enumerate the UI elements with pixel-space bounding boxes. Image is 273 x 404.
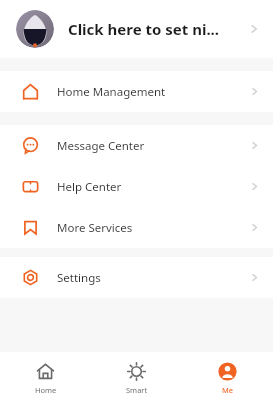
other: Me bbox=[218, 362, 237, 381]
other: Home bbox=[36, 362, 55, 381]
staticText: Smart bbox=[126, 385, 148, 395]
staticText: Click here to set ni... bbox=[68, 19, 243, 39]
other: Smart bbox=[127, 362, 146, 381]
staticText: Me bbox=[222, 385, 234, 395]
button[interactable]: Help Center bbox=[0, 166, 273, 207]
staticText: Message Center bbox=[57, 138, 250, 154]
button[interactable]: Me bbox=[182, 352, 273, 404]
button[interactable]: Message Center bbox=[0, 125, 273, 166]
staticText: Settings bbox=[57, 270, 250, 286]
button[interactable]: Settings bbox=[0, 257, 273, 298]
staticText: Help Center bbox=[57, 179, 250, 195]
button[interactable]: More Services bbox=[0, 207, 273, 248]
button[interactable]: Home bbox=[0, 352, 91, 404]
staticText: Home Management bbox=[57, 84, 250, 100]
staticText: Home bbox=[35, 385, 57, 395]
staticText: More Services bbox=[57, 220, 250, 236]
button[interactable]: Smart bbox=[91, 352, 182, 404]
button[interactable]: Click here to set ni... bbox=[0, 0, 273, 58]
button[interactable]: Home Management bbox=[0, 71, 273, 112]
